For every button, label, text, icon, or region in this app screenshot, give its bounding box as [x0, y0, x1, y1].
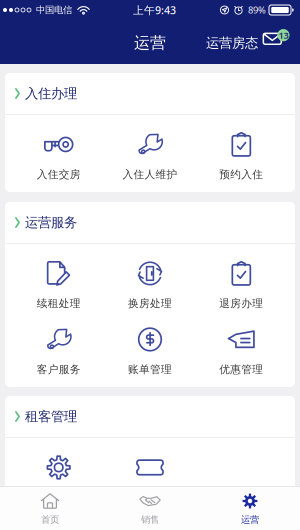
button[interactable]: 客户服务 [13, 310, 104, 376]
button[interactable]: 入住交房 [13, 115, 104, 181]
staticText: 首页 [41, 514, 59, 525]
staticText: 退房办理 [219, 297, 263, 310]
staticText: 运营 [134, 33, 166, 53]
button[interactable]: 租客卡券 [104, 438, 196, 504]
staticText: 入住办理 [25, 85, 77, 102]
staticText: 预约入住 [219, 168, 263, 181]
staticText: 租客卡券 [128, 491, 172, 504]
staticText: 入住交房 [37, 168, 81, 181]
button[interactable]: 续租处理 [13, 244, 104, 310]
button[interactable]: Messages, 13 unread [262, 31, 293, 53]
staticText: 运营 [241, 514, 259, 525]
button[interactable]: 优惠管理 [196, 310, 287, 376]
button[interactable]: 换房处理 [104, 244, 196, 310]
button[interactable]: 运营房态 [206, 27, 258, 59]
staticText: 销售 [141, 514, 159, 525]
staticText: 13 [278, 29, 288, 41]
button[interactable]: 账单管理 [104, 310, 196, 376]
button[interactable]: 销售 [100, 487, 200, 530]
staticText: 换房处理 [128, 297, 172, 310]
staticText: 运营房态 [206, 35, 258, 51]
staticText: 上午9:43 [133, 3, 176, 17]
button[interactable]: 租客信息 [13, 438, 104, 504]
staticText: 账单管理 [128, 363, 172, 376]
staticText: 租客信息 [37, 491, 81, 504]
staticText: 续租处理 [37, 297, 81, 310]
button[interactable]: 预约入住 [196, 115, 287, 181]
staticText: 中国电信 [36, 4, 72, 16]
staticText: 优惠管理 [219, 363, 263, 376]
staticText: 租客管理 [25, 408, 77, 425]
button[interactable]: 首页 [0, 487, 100, 530]
staticText: 89% [248, 4, 266, 16]
button[interactable]: 入住人维护 [104, 115, 196, 181]
staticText: 客户服务 [37, 363, 81, 376]
staticText: 运营服务 [25, 214, 77, 231]
staticText: 入住人维护 [122, 168, 177, 181]
button[interactable]: 退房办理 [196, 244, 287, 310]
button[interactable]: 运营 [200, 487, 300, 530]
